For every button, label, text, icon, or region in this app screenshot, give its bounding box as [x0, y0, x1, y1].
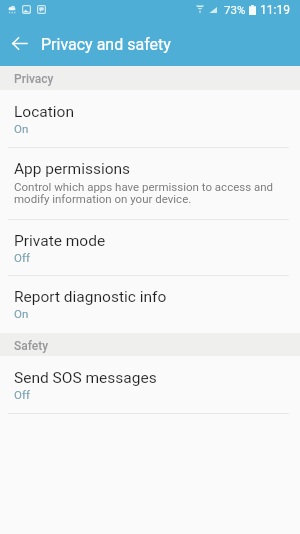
staticText: Send SOS messages — [14, 369, 157, 387]
staticText: Off — [14, 388, 30, 401]
button[interactable]: Location — [0, 90, 300, 148]
staticText: Privacy and safety — [41, 35, 171, 54]
staticText: Report diagnostic info — [14, 288, 167, 306]
staticText: On — [14, 122, 29, 135]
staticText: Off — [14, 251, 30, 264]
button[interactable]: Private mode — [0, 219, 300, 275]
staticText: Location — [14, 103, 74, 121]
button[interactable]: App permissions — [0, 148, 300, 219]
staticText: 73% — [224, 3, 246, 16]
button[interactable]: Report diagnostic info — [0, 275, 300, 333]
staticText: Privacy — [14, 72, 54, 86]
staticText: 11:19 — [260, 3, 290, 17]
button[interactable]: Back — [0, 20, 37, 66]
staticText: Private mode — [14, 232, 106, 250]
staticText: On — [14, 307, 29, 320]
staticText: App permissions — [14, 160, 131, 178]
button[interactable]: Send SOS messages — [0, 356, 300, 413]
staticText: Safety — [14, 339, 49, 353]
staticText: Control which apps have permission to ac… — [14, 180, 274, 206]
